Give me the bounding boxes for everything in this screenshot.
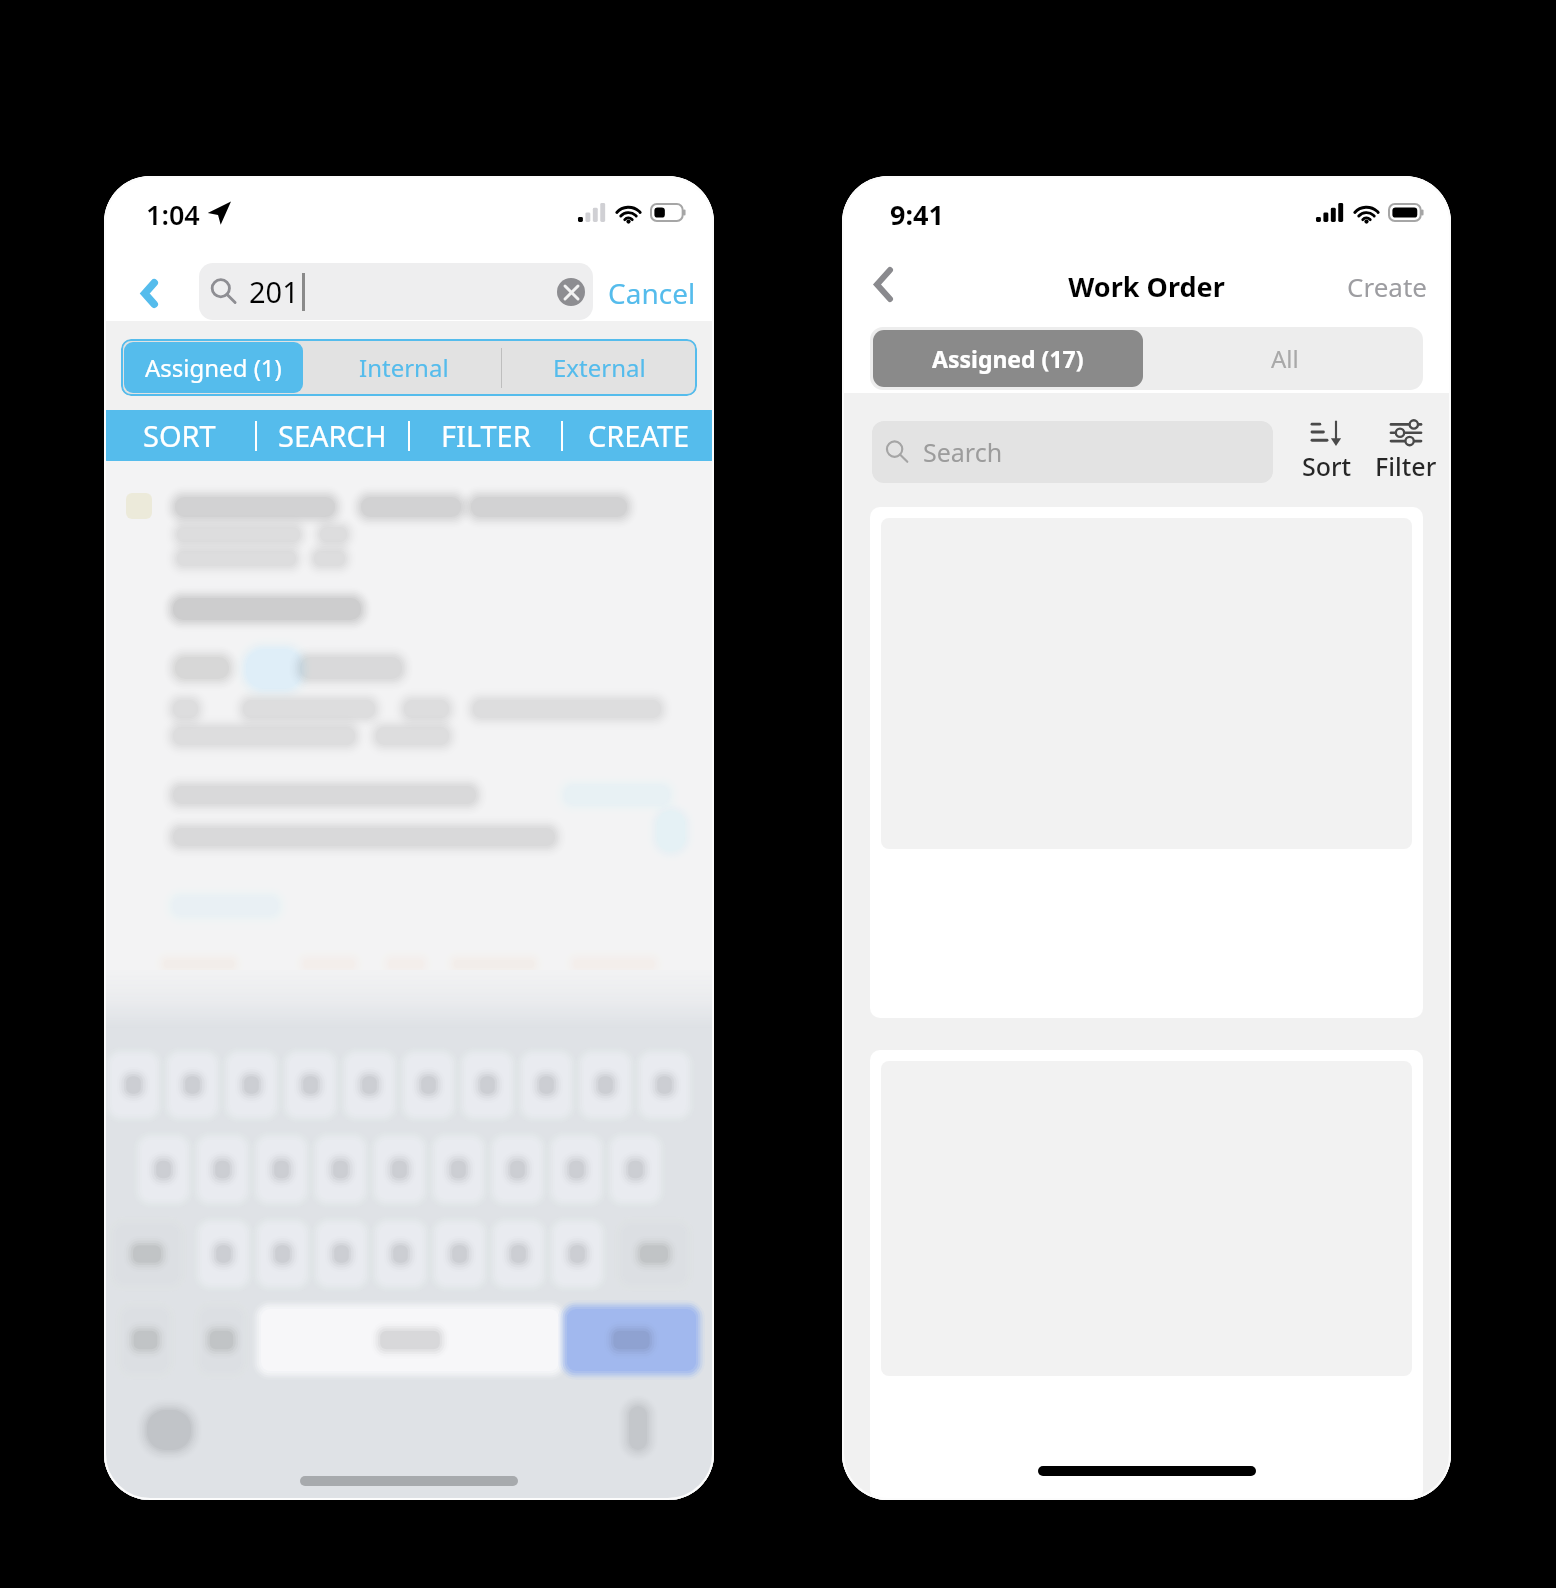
button[interactable]: Back [856, 257, 910, 311]
staticText: 1:04 [146, 196, 200, 233]
button[interactable]: FILTER [410, 410, 561, 461]
staticText: Assigned (17) [932, 343, 1084, 374]
staticText: Cancel [608, 274, 696, 312]
button[interactable]: 201 [199, 263, 593, 320]
button[interactable] [870, 1050, 1423, 1500]
button[interactable]: Assigned (1) [124, 342, 303, 393]
button[interactable]: All [1146, 327, 1423, 390]
button[interactable]: External [502, 339, 697, 396]
button[interactable]: CREATE [563, 410, 714, 461]
staticText: FILTER [441, 416, 531, 455]
button[interactable]: Filter [1373, 420, 1439, 483]
staticText: External [553, 351, 646, 384]
button[interactable]: Clear search [557, 278, 585, 306]
button[interactable]: Create [1336, 259, 1428, 313]
staticText: 9:41 [890, 196, 944, 233]
button[interactable]: Search [872, 421, 1273, 483]
staticText: Work Order [842, 268, 1451, 305]
staticText: Sort [1302, 449, 1352, 483]
staticText: SEARCH [278, 416, 387, 455]
button[interactable] [870, 507, 1423, 1018]
button[interactable]: Cancel [598, 264, 708, 321]
staticText: CREATE [588, 416, 690, 455]
staticText: Filter [1375, 449, 1437, 483]
button[interactable]: Assigned (17) [873, 330, 1143, 387]
button[interactable]: SORT [104, 410, 255, 461]
staticText: Create [1347, 269, 1427, 304]
staticText: Internal [359, 351, 449, 384]
staticText: Assigned (1) [145, 351, 282, 384]
staticText: 201 [249, 272, 299, 311]
button[interactable]: Back [124, 268, 174, 318]
button[interactable]: Internal [306, 339, 501, 396]
button[interactable]: SEARCH [257, 410, 408, 461]
button[interactable]: Sort [1294, 420, 1360, 483]
staticText: Search [923, 435, 1003, 469]
staticText: All [1271, 342, 1299, 375]
staticText: SORT [143, 416, 216, 455]
